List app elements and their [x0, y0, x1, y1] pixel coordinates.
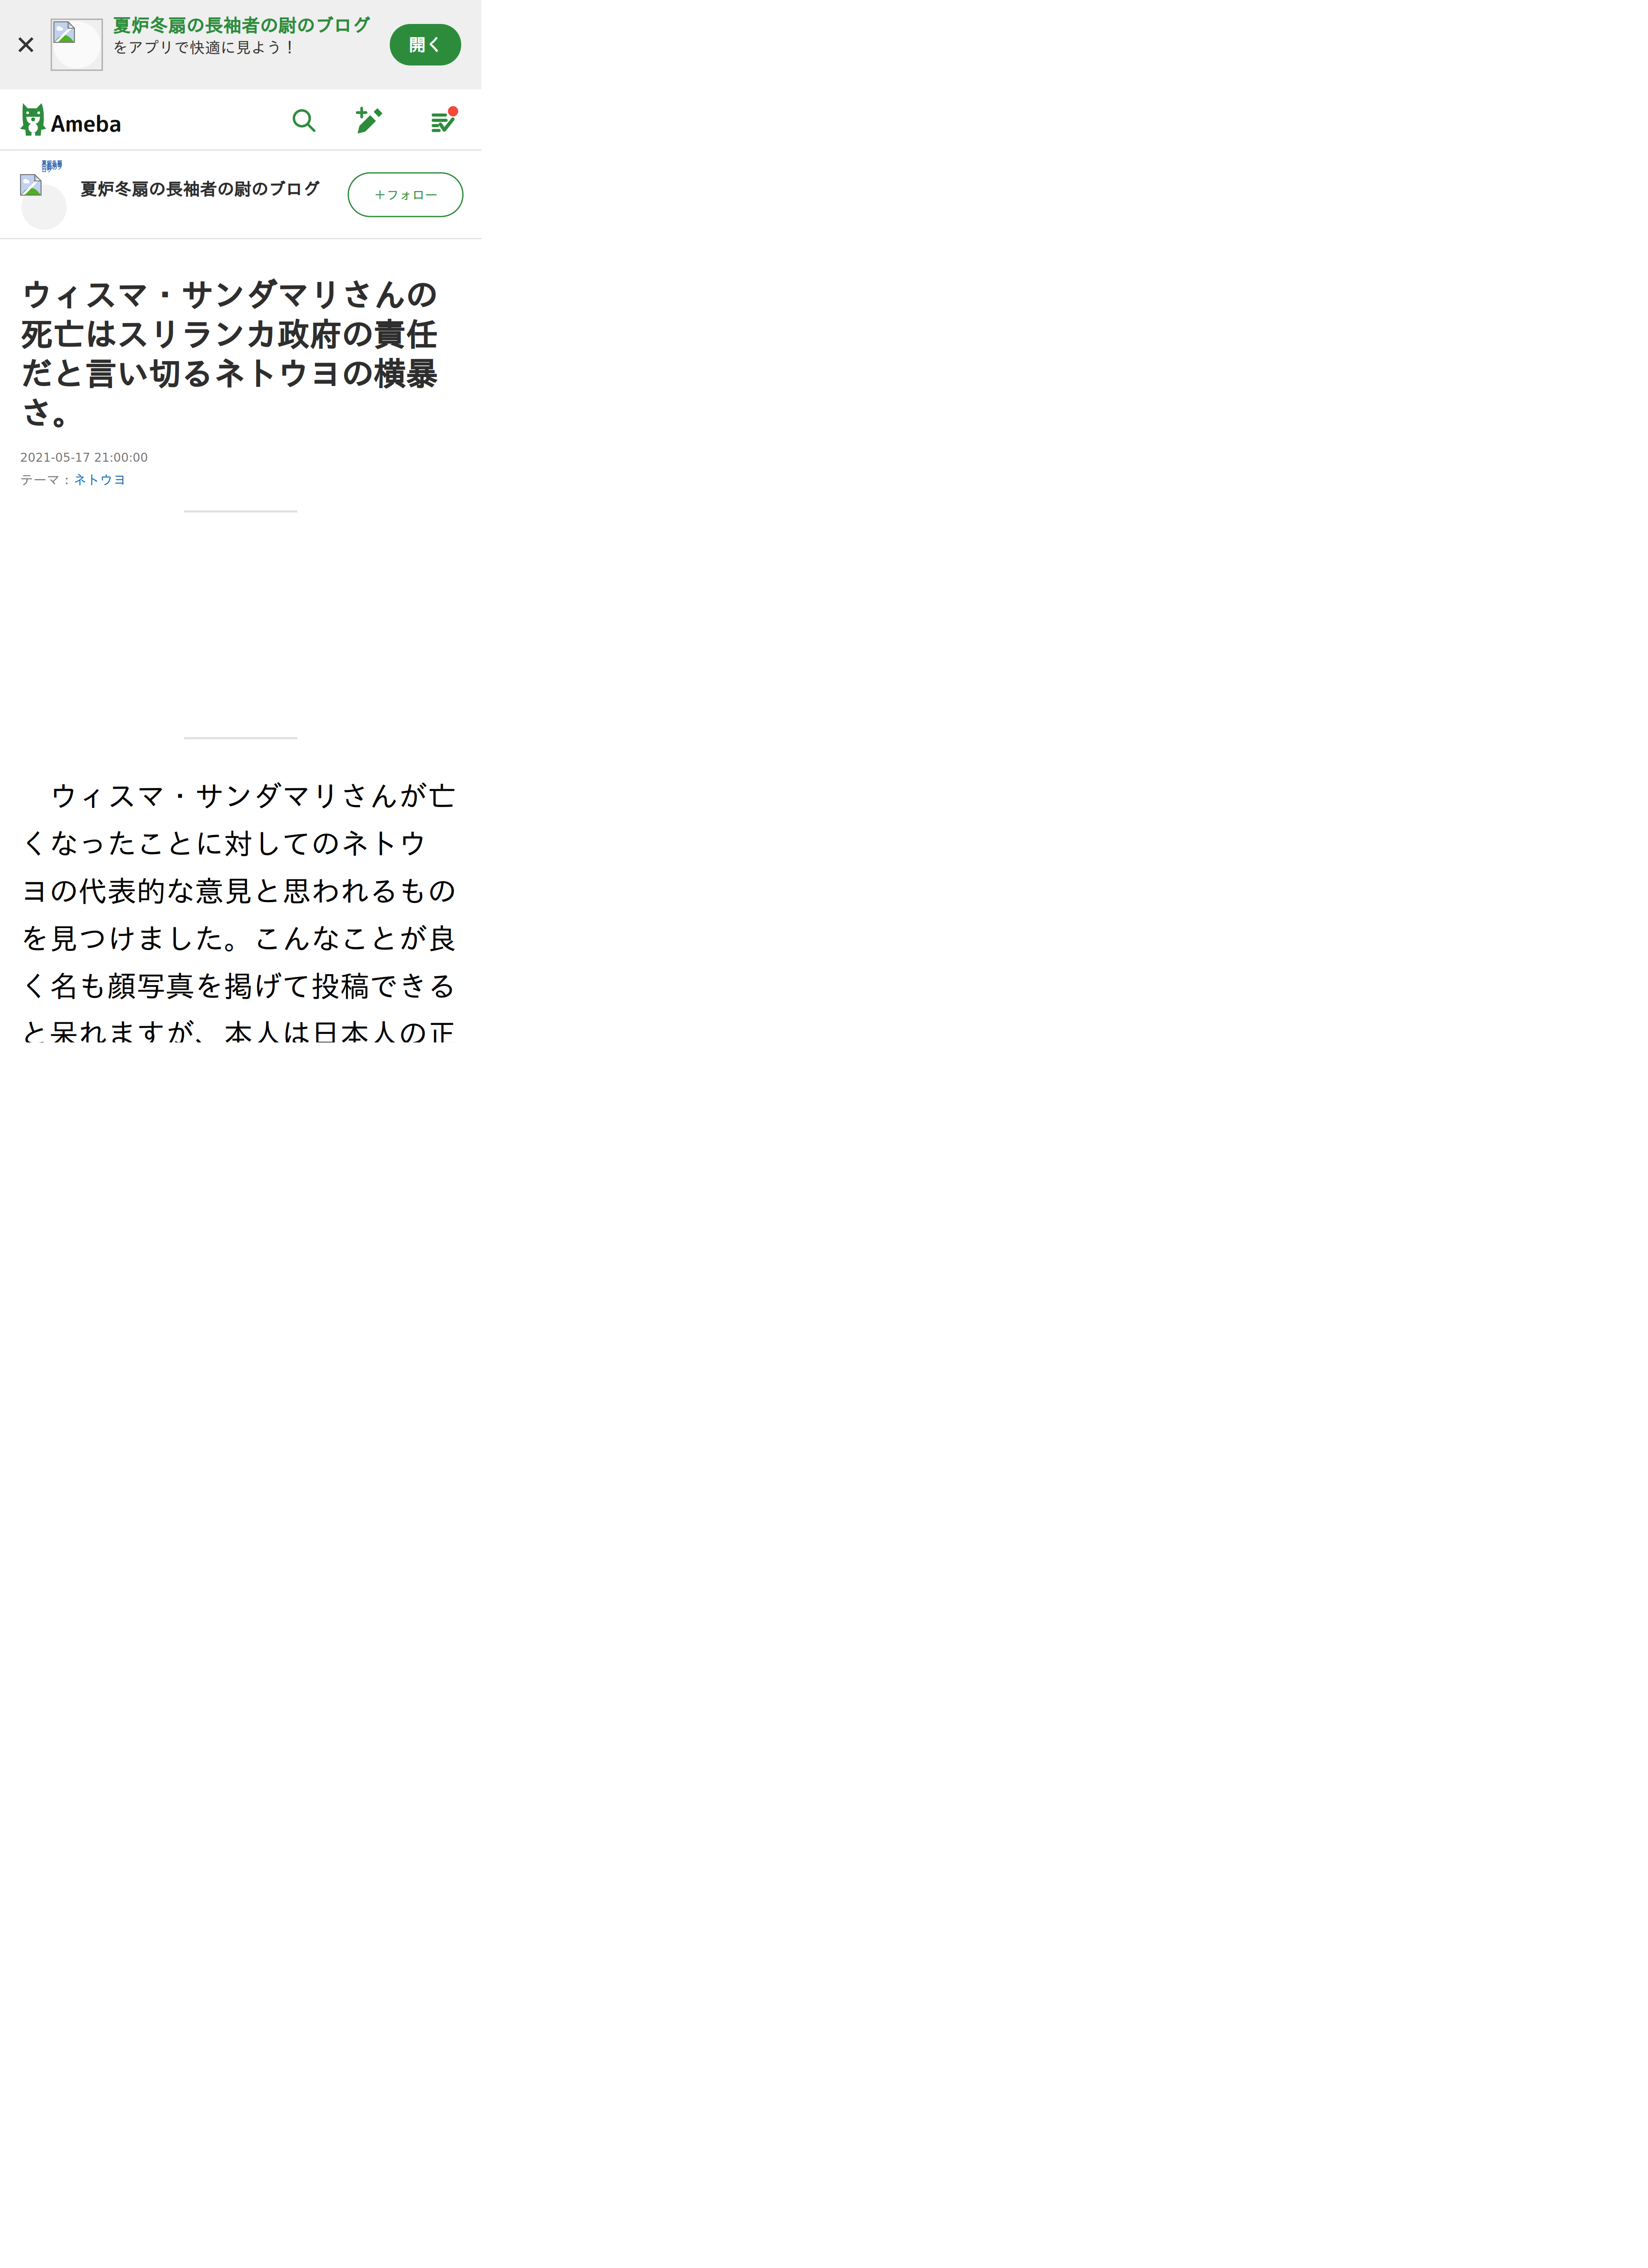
staticText: ウィスマ・サンダマリさんの死亡はスリランカ政府の責任だと言い切るネトウヨの横暴さ… — [20, 279, 437, 429]
button[interactable]: Ameba ホーム — [0, 89, 145, 149]
button[interactable]: 開く — [390, 24, 461, 65]
button[interactable]: ブログのプロフィール画像 — [20, 151, 105, 219]
staticText: 2021-05-17 21:00:00 — [20, 451, 148, 465]
staticText: 夏炉冬扇の長袖者の尉のブログ — [41, 160, 62, 173]
button[interactable]: ブログを書く — [344, 89, 395, 151]
button[interactable]: ネトウヨ — [73, 473, 126, 486]
staticText: Ameba — [50, 108, 122, 139]
staticText: ウィスマ・サンダマリさんが亡 くなったことに対してのネトウ ヨの代表的な意見と思… — [20, 781, 456, 1048]
button[interactable]: ＋フォロー — [348, 173, 463, 217]
button[interactable]: 検索 — [282, 89, 334, 151]
staticText: ＋フォロー — [373, 188, 438, 201]
staticText: ネトウヨ — [73, 473, 126, 486]
button[interactable]: 閉じる — [0, 0, 51, 89]
staticText: 夏炉冬扇の長袖者の尉のブログ — [113, 16, 370, 34]
button[interactable]: 夏炉冬扇の長袖者の尉のブログ — [80, 181, 320, 197]
staticText: 開く — [408, 36, 443, 53]
button[interactable]: お知らせ — [424, 89, 475, 151]
staticText: をアプリで快適に見よう！ — [113, 40, 297, 55]
staticText: 夏炉冬扇の長袖者の尉のブログ — [80, 181, 320, 197]
staticText: テーマ： — [20, 473, 73, 486]
